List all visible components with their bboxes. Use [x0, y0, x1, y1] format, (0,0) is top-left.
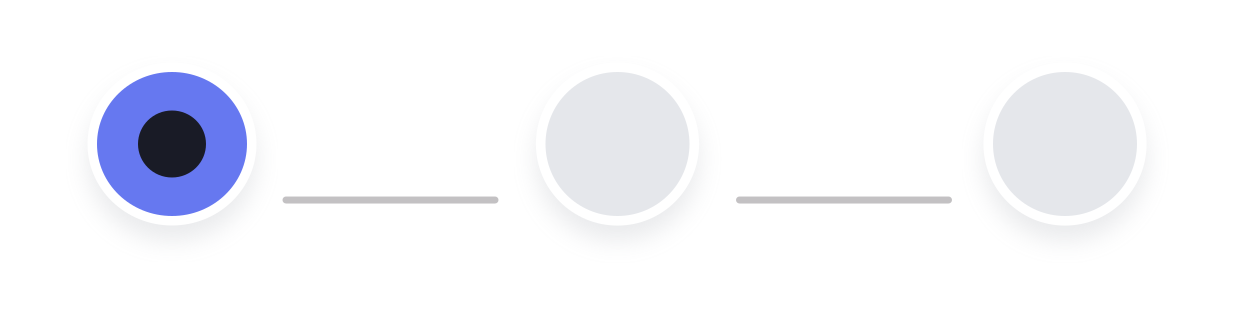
- button[interactable]: Step 2: [536, 62, 699, 226]
- button[interactable]: Step 1, current: [87, 62, 256, 225]
- button[interactable]: Step 3: [983, 62, 1147, 226]
